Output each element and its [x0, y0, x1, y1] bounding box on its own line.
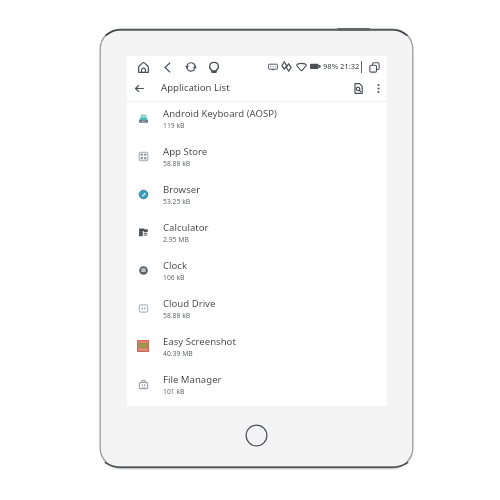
- button[interactable]: Refresh: [184, 60, 198, 74]
- staticText: Easy Screenshot: [163, 335, 236, 348]
- staticText: Browser: [163, 183, 201, 196]
- staticText: Calculator: [163, 221, 209, 234]
- button[interactable]: Front light: [207, 60, 221, 74]
- staticText: 21:32: [340, 61, 360, 71]
- button[interactable]: Recent apps: [367, 60, 381, 74]
- staticText: 98%: [323, 61, 339, 71]
- staticText: Application List: [161, 81, 230, 94]
- button[interactable]: More options: [370, 80, 386, 96]
- button[interactable]: Calculator: [127, 213, 387, 251]
- button[interactable]: File Manager: [127, 365, 387, 403]
- button[interactable]: App Store: [127, 137, 387, 175]
- button[interactable]: Navigate back: [130, 79, 148, 97]
- staticText: Android Keyboard (AOSP): [163, 107, 277, 120]
- staticText: 58.88 kB: [163, 159, 191, 168]
- staticText: 2.95 MB: [163, 235, 189, 244]
- button[interactable]: Home: [136, 60, 150, 74]
- staticText: Cloud Drive: [163, 297, 216, 310]
- button[interactable]: Back: [160, 60, 174, 74]
- staticText: 40.39 MB: [163, 349, 193, 358]
- button[interactable]: Clock: [127, 251, 387, 289]
- staticText: App Store: [163, 145, 208, 158]
- staticText: 106 kB: [163, 273, 185, 282]
- staticText: 58.88 kB: [163, 311, 191, 320]
- button[interactable]: Search in document: [349, 79, 367, 97]
- button[interactable]: Home button: [245, 424, 268, 447]
- staticText: File Manager: [163, 373, 222, 386]
- button[interactable]: Browser: [127, 175, 387, 213]
- staticText: 53.25 kB: [163, 197, 191, 206]
- staticText: 119 kB: [163, 121, 185, 130]
- staticText: Clock: [163, 259, 188, 272]
- button[interactable]: Android Keyboard (AOSP): [127, 99, 387, 137]
- button[interactable]: Cloud Drive: [127, 289, 387, 327]
- button[interactable]: Easy Screenshot: [127, 327, 387, 365]
- staticText: 101 kB: [163, 387, 185, 396]
